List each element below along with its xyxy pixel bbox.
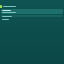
button[interactable]: [1, 15, 63, 17]
button[interactable]: [1, 9, 63, 14]
other: Status: [0, 5, 2, 8]
button[interactable]: Status: [0, 4, 64, 8]
button[interactable]: [2, 18, 62, 20]
